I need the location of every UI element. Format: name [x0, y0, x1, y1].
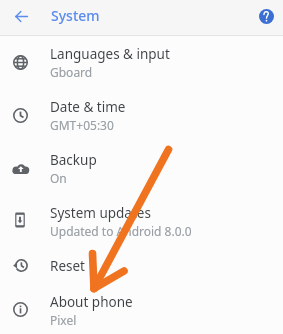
button[interactable]: Reset	[0, 239, 283, 291]
button[interactable]: Backup	[0, 142, 283, 194]
staticText: Updated to Android 8.0.0	[50, 223, 192, 239]
button[interactable]: Date & time	[0, 89, 283, 141]
button[interactable]: About phone	[0, 283, 283, 334]
staticText: Languages & input	[50, 45, 170, 63]
staticText: About phone	[50, 293, 133, 311]
staticText: Date & time	[50, 98, 126, 116]
staticText: Reset	[50, 257, 85, 275]
staticText: Backup	[50, 151, 97, 169]
staticText: Gboard	[50, 64, 93, 80]
staticText: Pixel	[50, 312, 77, 328]
button[interactable]: System updates	[0, 194, 283, 246]
button[interactable]: Back	[9, 4, 33, 28]
staticText: System	[51, 6, 100, 25]
staticText: On	[50, 170, 67, 186]
staticText: System updates	[50, 204, 151, 222]
button[interactable]: Languages & input	[0, 36, 283, 88]
staticText: GMT+05:30	[50, 117, 114, 133]
button[interactable]: Help	[254, 4, 278, 28]
